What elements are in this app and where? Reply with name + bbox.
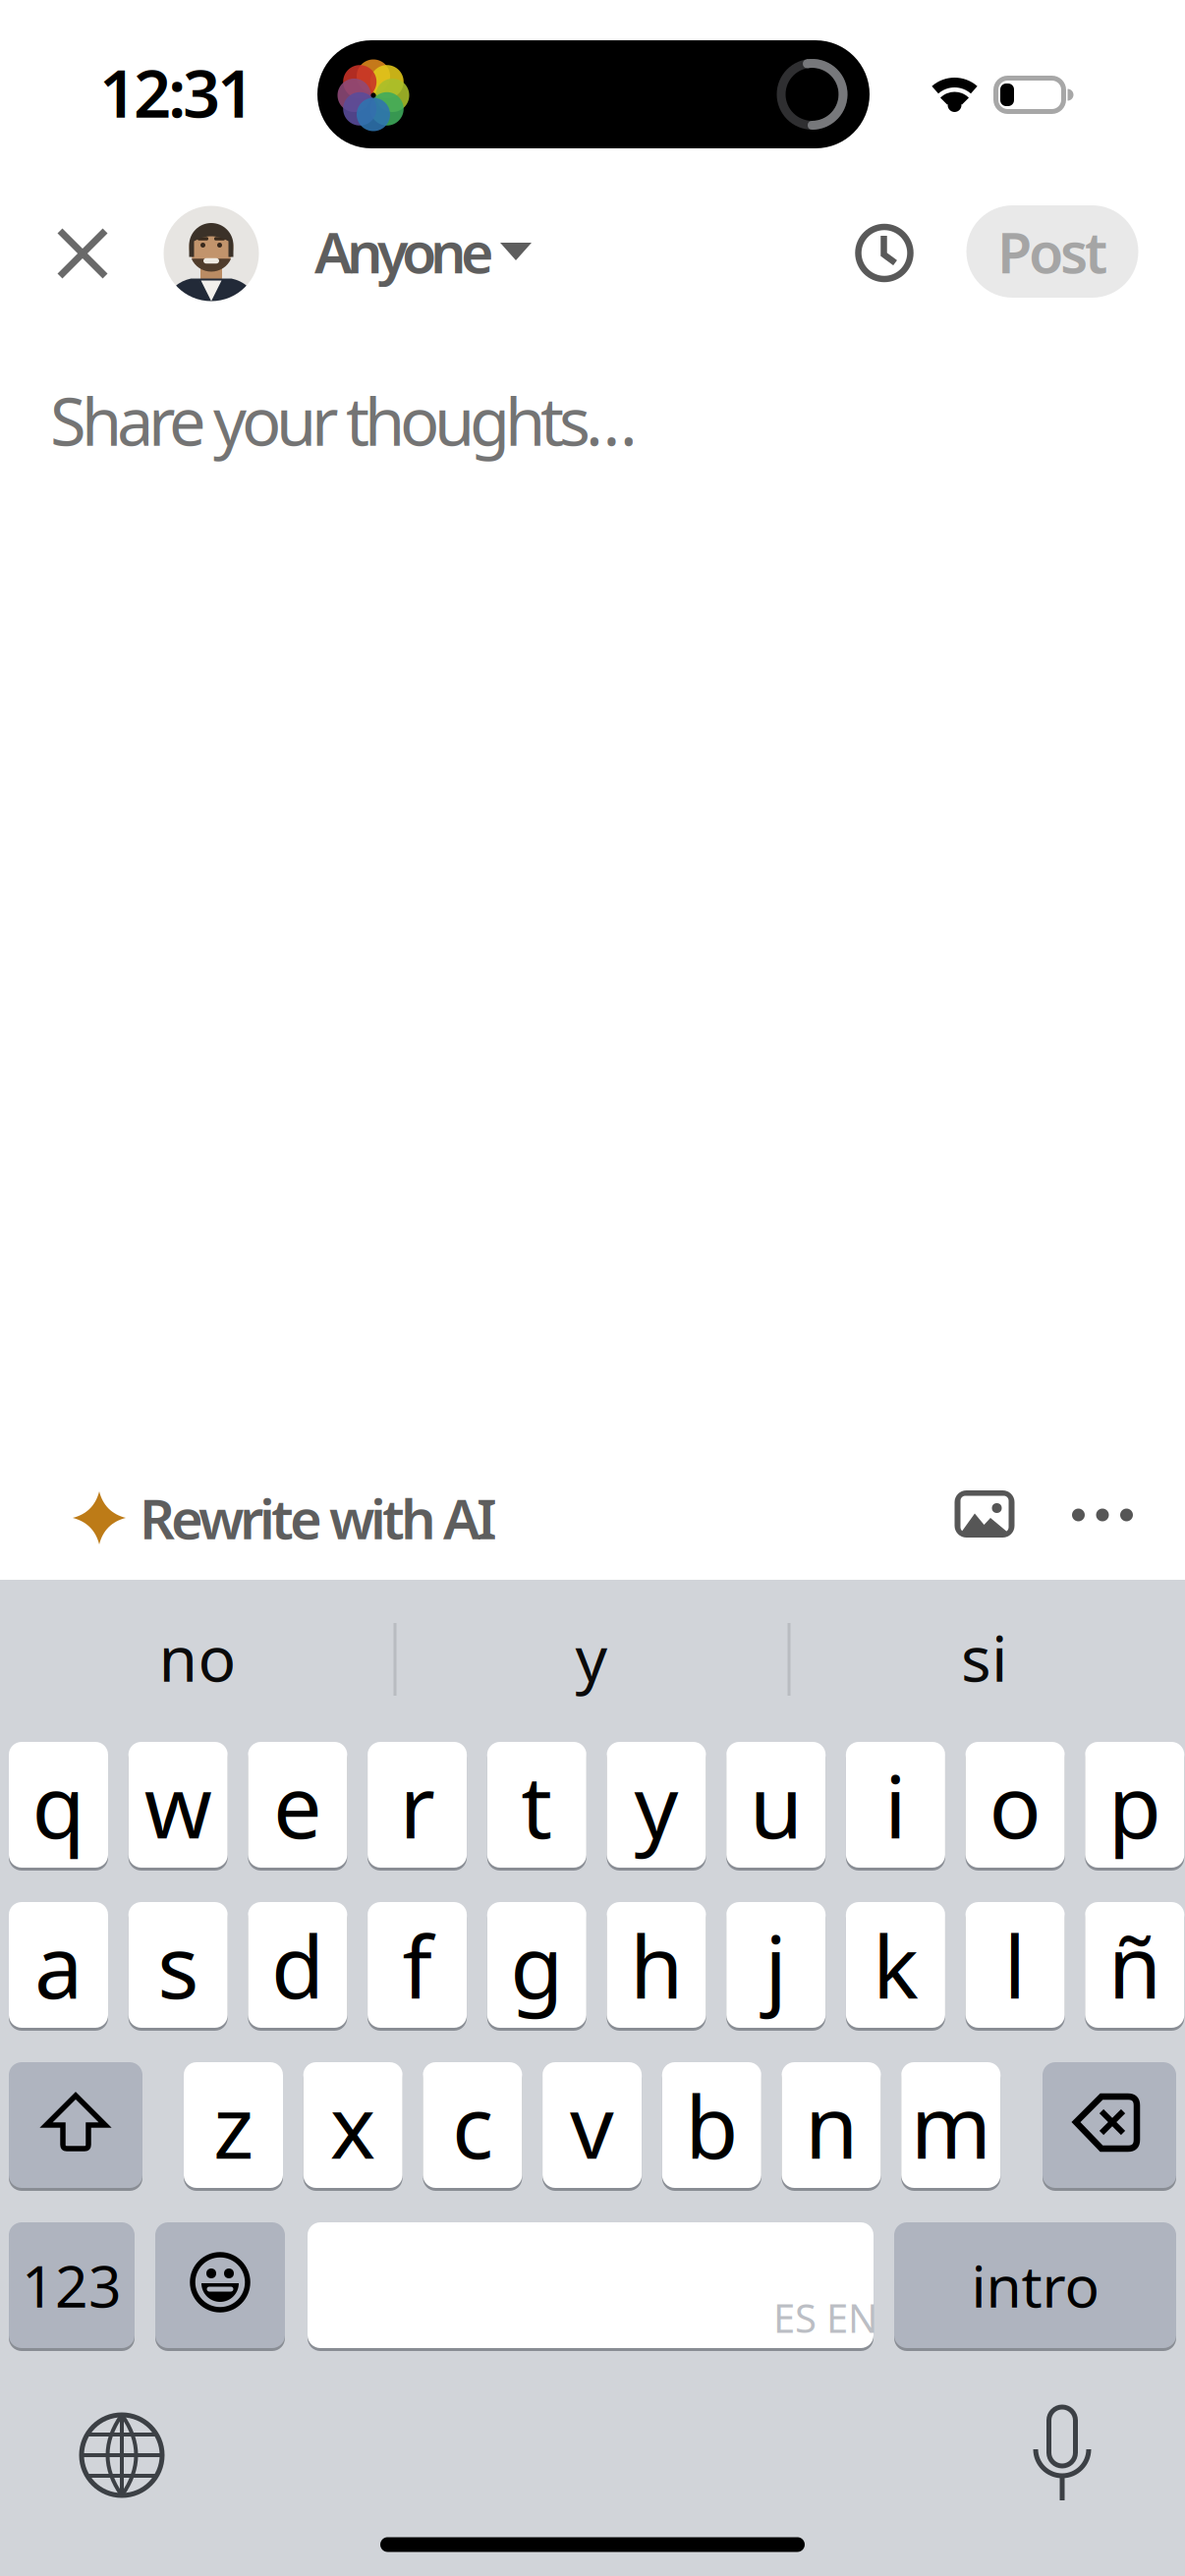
staticText: b bbox=[685, 2068, 738, 2183]
staticText: j bbox=[765, 1908, 787, 2022]
staticText: v bbox=[570, 2068, 614, 2183]
staticText: intro bbox=[971, 2247, 1099, 2323]
button[interactable]: si bbox=[793, 1603, 1176, 1711]
button[interactable]: w bbox=[128, 1740, 228, 1869]
staticText: si bbox=[961, 1616, 1008, 1699]
button[interactable] bbox=[955, 1490, 1015, 1538]
staticText: u bbox=[749, 1747, 802, 1862]
staticText: g bbox=[510, 1908, 563, 2022]
button[interactable]: b bbox=[662, 2061, 761, 2189]
button[interactable]: x bbox=[303, 2061, 403, 2189]
staticText: Rewrite with AI bbox=[140, 1481, 497, 1554]
button[interactable]: d bbox=[248, 1901, 347, 2029]
staticText: ES EN bbox=[773, 2291, 877, 2344]
button[interactable]: t bbox=[487, 1740, 586, 1869]
button[interactable]: q bbox=[9, 1740, 108, 1869]
staticText: r bbox=[400, 1747, 435, 1862]
staticText: e bbox=[273, 1747, 322, 1862]
button[interactable] bbox=[77, 2410, 167, 2500]
staticText: h bbox=[630, 1908, 683, 2022]
staticText: z bbox=[213, 2068, 254, 2183]
button[interactable]: p bbox=[1085, 1740, 1184, 1869]
staticText: ñ bbox=[1108, 1908, 1161, 2022]
button[interactable]: f bbox=[368, 1901, 467, 2029]
button[interactable]: r bbox=[368, 1740, 467, 1869]
button[interactable]: no bbox=[6, 1603, 389, 1711]
staticText: l bbox=[1004, 1908, 1026, 2022]
button[interactable] bbox=[164, 206, 259, 301]
button[interactable]: h bbox=[607, 1901, 706, 2029]
staticText: no bbox=[159, 1616, 236, 1699]
staticText: f bbox=[402, 1908, 432, 2022]
button[interactable]: Anyone bbox=[314, 215, 540, 290]
button[interactable] bbox=[155, 2221, 285, 2350]
staticText: p bbox=[1108, 1747, 1161, 1862]
button[interactable]: y bbox=[607, 1740, 706, 1869]
button[interactable] bbox=[1031, 2404, 1094, 2506]
button[interactable]: Rewrite with AI bbox=[73, 1474, 515, 1562]
button[interactable] bbox=[308, 2221, 874, 2350]
button[interactable]: u bbox=[726, 1740, 826, 1869]
staticText: Post bbox=[997, 214, 1107, 289]
staticText: w bbox=[144, 1747, 212, 1862]
button[interactable]: s bbox=[128, 1901, 228, 2029]
staticText: q bbox=[32, 1747, 85, 1862]
button[interactable]: intro bbox=[894, 2221, 1176, 2350]
button[interactable]: m bbox=[901, 2061, 1000, 2189]
staticText: i bbox=[884, 1747, 907, 1862]
button[interactable]: o bbox=[965, 1740, 1065, 1869]
button[interactable]: j bbox=[726, 1901, 826, 2029]
button[interactable] bbox=[852, 221, 917, 285]
staticText: k bbox=[872, 1908, 919, 2022]
button[interactable] bbox=[9, 2061, 142, 2189]
button[interactable]: e bbox=[248, 1740, 347, 1869]
button[interactable] bbox=[1058, 1481, 1147, 1549]
button[interactable]: y bbox=[400, 1603, 783, 1711]
button[interactable]: Post bbox=[966, 205, 1138, 298]
staticText: y bbox=[634, 1747, 678, 1862]
button[interactable]: n bbox=[782, 2061, 881, 2189]
staticText: t bbox=[521, 1747, 553, 1862]
staticText: y bbox=[575, 1616, 608, 1699]
button[interactable]: a bbox=[9, 1901, 108, 2029]
button[interactable]: g bbox=[487, 1901, 586, 2029]
staticText: Share your thoughts… bbox=[50, 377, 638, 464]
staticText: d bbox=[271, 1908, 324, 2022]
button[interactable] bbox=[53, 224, 112, 283]
button[interactable]: z bbox=[184, 2061, 283, 2189]
staticText: n bbox=[805, 2068, 858, 2183]
staticText: x bbox=[330, 2068, 376, 2183]
staticText: a bbox=[34, 1908, 83, 2022]
staticText: Anyone bbox=[314, 214, 494, 289]
button[interactable]: Share your thoughts… bbox=[50, 366, 679, 475]
staticText: c bbox=[452, 2068, 493, 2183]
button[interactable]: 123 bbox=[9, 2221, 135, 2350]
button[interactable]: k bbox=[846, 1901, 945, 2029]
button[interactable]: ñ bbox=[1085, 1901, 1184, 2029]
button[interactable] bbox=[1043, 2061, 1176, 2189]
staticText: 123 bbox=[22, 2247, 122, 2323]
staticText: o bbox=[989, 1747, 1041, 1862]
button[interactable]: l bbox=[965, 1901, 1065, 2029]
button[interactable]: i bbox=[846, 1740, 945, 1869]
button[interactable]: v bbox=[542, 2061, 642, 2189]
button[interactable]: c bbox=[423, 2061, 522, 2189]
staticText: s bbox=[157, 1908, 199, 2022]
staticText: 12:31 bbox=[99, 49, 254, 136]
staticText: m bbox=[911, 2068, 991, 2183]
